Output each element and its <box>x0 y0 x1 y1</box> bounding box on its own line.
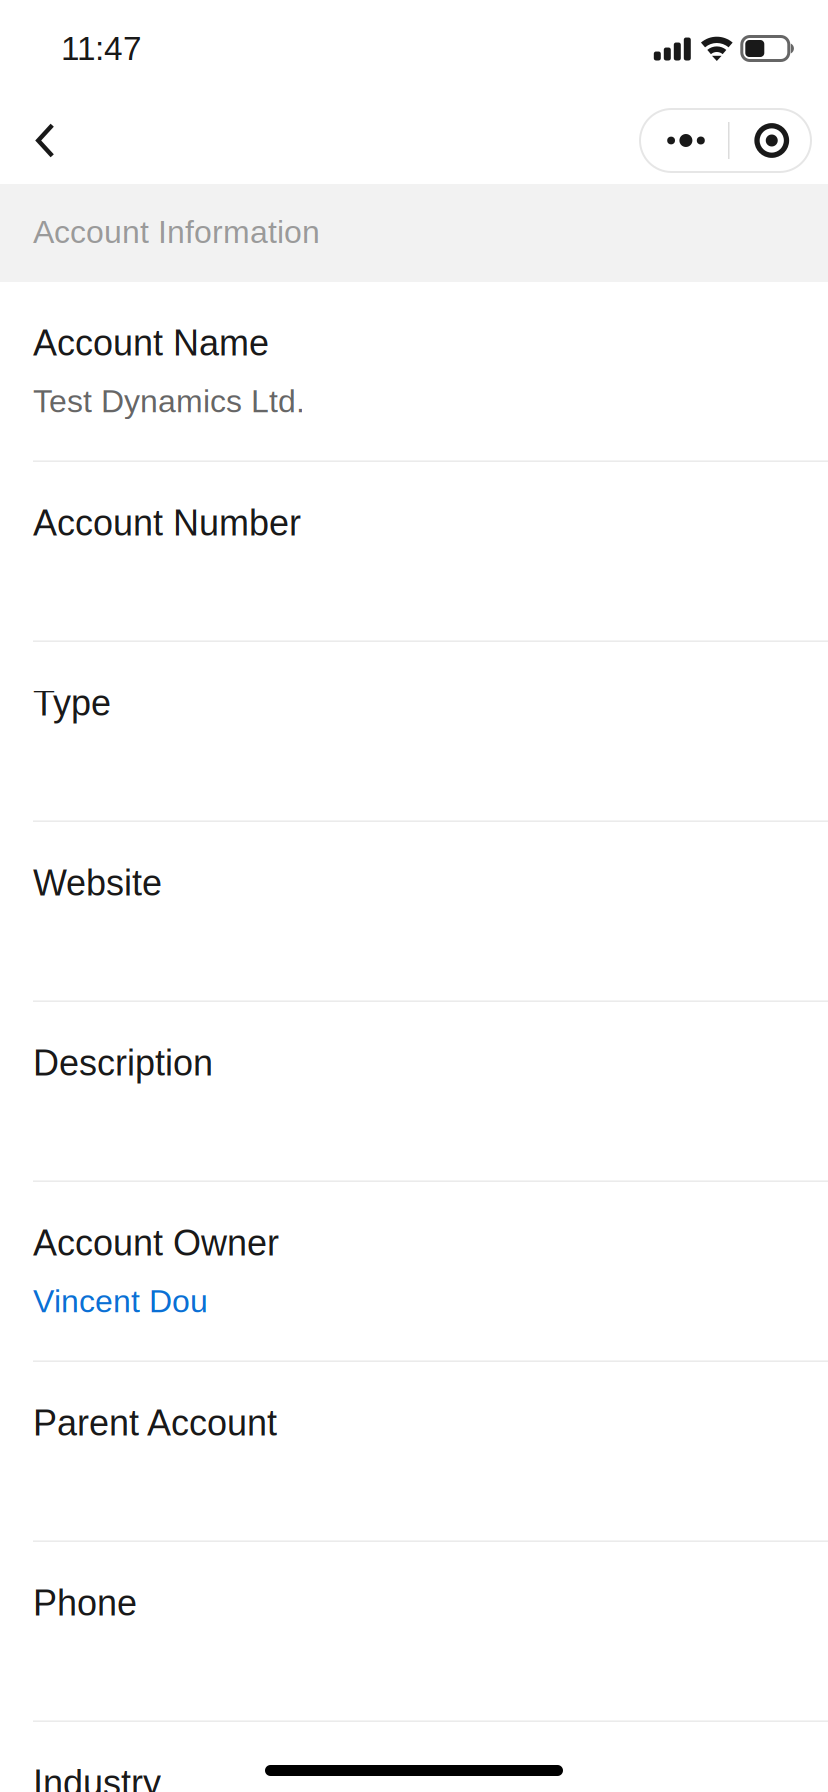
button[interactable]: Industry <box>0 1722 828 1792</box>
staticText: Description <box>33 1043 213 1083</box>
button[interactable]: Close mini program <box>729 109 811 172</box>
staticText: Account Name <box>33 323 269 363</box>
staticText: Account Number <box>33 503 301 543</box>
staticText: 11:47 <box>61 30 142 67</box>
staticText: Account Owner <box>33 1223 279 1263</box>
staticText: Website <box>33 863 162 903</box>
button[interactable]: Phone <box>0 1542 828 1722</box>
button[interactable]: Back <box>0 92 87 184</box>
button[interactable]: Website <box>0 822 828 1002</box>
button[interactable]: More <box>640 109 728 172</box>
staticText: Vincent Dou <box>33 1283 208 1319</box>
staticText: Phone <box>33 1583 137 1623</box>
button[interactable]: Type <box>0 642 828 822</box>
staticText: Industry <box>33 1763 161 1792</box>
staticText: Test Dynamics Ltd. <box>33 383 305 419</box>
button[interactable]: Description <box>0 1002 828 1182</box>
button[interactable]: Parent Account <box>0 1362 828 1542</box>
staticText: Type <box>33 683 111 723</box>
staticText: Parent Account <box>33 1403 277 1443</box>
staticText: Account Information <box>33 214 320 250</box>
button[interactable]: Account Number <box>0 462 828 642</box>
button[interactable]: Account Owner <box>0 1182 828 1362</box>
button[interactable]: Account Name <box>0 282 828 462</box>
